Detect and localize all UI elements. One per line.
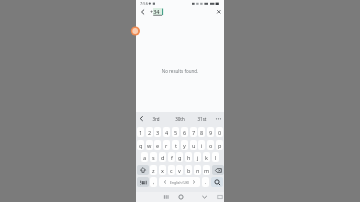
button[interactable] xyxy=(212,165,224,175)
staticText: English (UK) xyxy=(170,180,190,185)
staticText: u xyxy=(192,142,196,149)
button[interactable]: o xyxy=(207,140,214,150)
staticText: q xyxy=(139,142,143,149)
button[interactable] xyxy=(160,192,172,202)
button[interactable]: l xyxy=(212,152,219,162)
button[interactable]: u xyxy=(190,140,197,150)
button[interactable]: q xyxy=(137,140,144,150)
button[interactable]: 7 xyxy=(190,127,197,137)
button[interactable]: x xyxy=(159,165,166,175)
button[interactable] xyxy=(211,177,223,187)
button[interactable]: j xyxy=(194,152,201,162)
button[interactable]: z xyxy=(150,165,157,175)
staticText: 9 xyxy=(209,129,213,136)
staticText: x xyxy=(161,167,164,174)
staticText: c xyxy=(170,167,173,174)
button[interactable]: 8 xyxy=(198,127,205,137)
button[interactable]: k xyxy=(203,152,210,162)
staticText: 7 xyxy=(192,129,196,136)
button[interactable]: c xyxy=(168,165,175,175)
button[interactable]: m xyxy=(203,165,210,175)
button[interactable]: d xyxy=(159,152,166,162)
staticText: , xyxy=(153,179,155,186)
button[interactable]: v xyxy=(176,165,183,175)
button[interactable]: f xyxy=(168,152,175,162)
staticText: d xyxy=(161,154,165,161)
button[interactable] xyxy=(198,192,210,202)
staticText: 6 xyxy=(183,129,187,136)
button[interactable]: +34 xyxy=(136,7,224,17)
button[interactable]: 9 xyxy=(207,127,214,137)
button[interactable] xyxy=(137,177,149,187)
staticText: 0 xyxy=(218,129,222,136)
staticText: g xyxy=(178,154,182,161)
button[interactable]: g xyxy=(176,152,183,162)
button[interactable]: 4 xyxy=(163,127,170,137)
staticText: b xyxy=(187,167,191,174)
staticText: p xyxy=(218,142,222,149)
button[interactable]: 2 xyxy=(146,127,153,137)
staticText: 8 xyxy=(200,129,204,136)
button[interactable] xyxy=(175,192,187,202)
button[interactable]: p xyxy=(216,140,223,150)
staticText: w xyxy=(147,142,152,149)
button[interactable] xyxy=(136,26,141,36)
button[interactable]: n xyxy=(194,165,201,175)
button[interactable] xyxy=(137,165,149,175)
staticText: f xyxy=(171,154,173,161)
staticText: j xyxy=(197,154,199,161)
button[interactable]: 31st xyxy=(196,116,208,122)
staticText: z xyxy=(152,167,155,174)
staticText: +34 xyxy=(150,8,160,15)
staticText: . xyxy=(205,179,207,186)
button[interactable]: s xyxy=(150,152,157,162)
staticText: n xyxy=(196,167,200,174)
button[interactable]: w xyxy=(146,140,153,150)
staticText: r xyxy=(165,142,168,149)
button[interactable]: t xyxy=(172,140,179,150)
button[interactable]: i xyxy=(198,140,205,150)
staticText: a xyxy=(143,154,147,161)
staticText: t xyxy=(175,142,177,149)
staticText: m xyxy=(204,167,210,174)
button[interactable]: 3rd xyxy=(151,116,161,122)
staticText: h xyxy=(187,154,191,161)
staticText: 4 xyxy=(165,129,169,136)
staticText: 3 xyxy=(156,129,160,136)
button[interactable]: 5 xyxy=(172,127,179,137)
button[interactable]: b xyxy=(185,165,192,175)
staticText: l xyxy=(215,154,217,161)
staticText: s xyxy=(152,154,155,161)
button[interactable]: h xyxy=(185,152,192,162)
staticText: 7:56 xyxy=(140,1,148,6)
staticText: e xyxy=(156,142,160,149)
button[interactable]: 3 xyxy=(154,127,161,137)
staticText: 2 xyxy=(148,129,152,136)
staticText: No results found. xyxy=(136,68,224,74)
button[interactable]: 6 xyxy=(181,127,188,137)
staticText: 5 xyxy=(174,129,178,136)
button[interactable]: 30th xyxy=(174,116,186,122)
button[interactable]: 0 xyxy=(216,127,223,137)
staticText: 1 xyxy=(139,129,143,136)
button[interactable]: English (UK) xyxy=(159,177,200,187)
staticText: i xyxy=(201,142,203,149)
staticText: y xyxy=(183,142,186,149)
button[interactable]: 1 xyxy=(137,127,144,137)
button[interactable]: a xyxy=(141,152,148,162)
button[interactable]: y xyxy=(181,140,188,150)
button[interactable]: , xyxy=(150,177,157,187)
staticText: k xyxy=(205,154,208,161)
button[interactable]: . xyxy=(202,177,209,187)
button[interactable]: r xyxy=(163,140,170,150)
staticText: o xyxy=(209,142,213,149)
staticText: v xyxy=(178,167,181,174)
button[interactable]: e xyxy=(154,140,161,150)
